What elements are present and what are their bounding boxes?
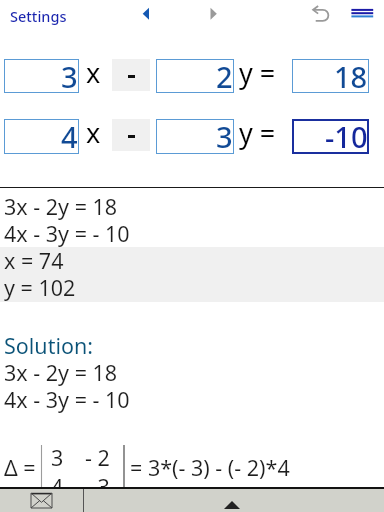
staticText: 18 <box>334 57 368 91</box>
button[interactable] <box>112 119 150 151</box>
staticText: x <box>86 114 101 151</box>
staticText: Δ = <box>4 453 36 482</box>
button[interactable]: 18 <box>292 59 369 93</box>
button[interactable] <box>112 59 150 91</box>
button[interactable]: 3 <box>4 59 79 93</box>
staticText: 4 <box>61 117 78 152</box>
button[interactable]: Mail <box>0 489 83 512</box>
button[interactable]: -10 <box>292 119 369 154</box>
button[interactable]: 2 <box>156 59 234 93</box>
button[interactable]: Undo <box>310 5 332 23</box>
staticText: -10 <box>325 117 368 152</box>
staticText: 3x - 2y = 18 <box>4 358 118 387</box>
button[interactable]: 4 <box>4 119 79 154</box>
button[interactable]: 3 <box>156 119 234 154</box>
staticText: 4x - 3y = - 10 <box>4 385 130 414</box>
staticText: 4 <box>51 472 64 501</box>
staticText: - 2 <box>85 443 110 472</box>
staticText: y = <box>239 54 276 91</box>
button[interactable]: Next <box>203 3 223 25</box>
staticText: Solution: <box>4 331 94 360</box>
staticText: y = <box>239 114 276 151</box>
staticText: x = 74 <box>4 246 64 275</box>
staticText: y = 102 <box>4 273 76 302</box>
button[interactable]: Menu <box>349 3 375 21</box>
button[interactable]: Collapse <box>84 489 384 512</box>
staticText: x <box>86 54 101 91</box>
staticText: 3 <box>51 443 64 472</box>
staticText: = 3*(- 3) - (- 2)*4 <box>130 453 290 482</box>
staticText: 4x - 3y = - 10 <box>4 219 130 248</box>
button[interactable]: Settings <box>10 6 67 26</box>
staticText: 3x - 2y = 18 <box>4 192 118 221</box>
staticText: 3 <box>61 57 78 91</box>
staticText: 2 <box>216 57 233 91</box>
button[interactable]: Previous <box>136 3 156 25</box>
staticText: - 3 <box>85 472 110 501</box>
staticText: 3 <box>216 117 233 152</box>
